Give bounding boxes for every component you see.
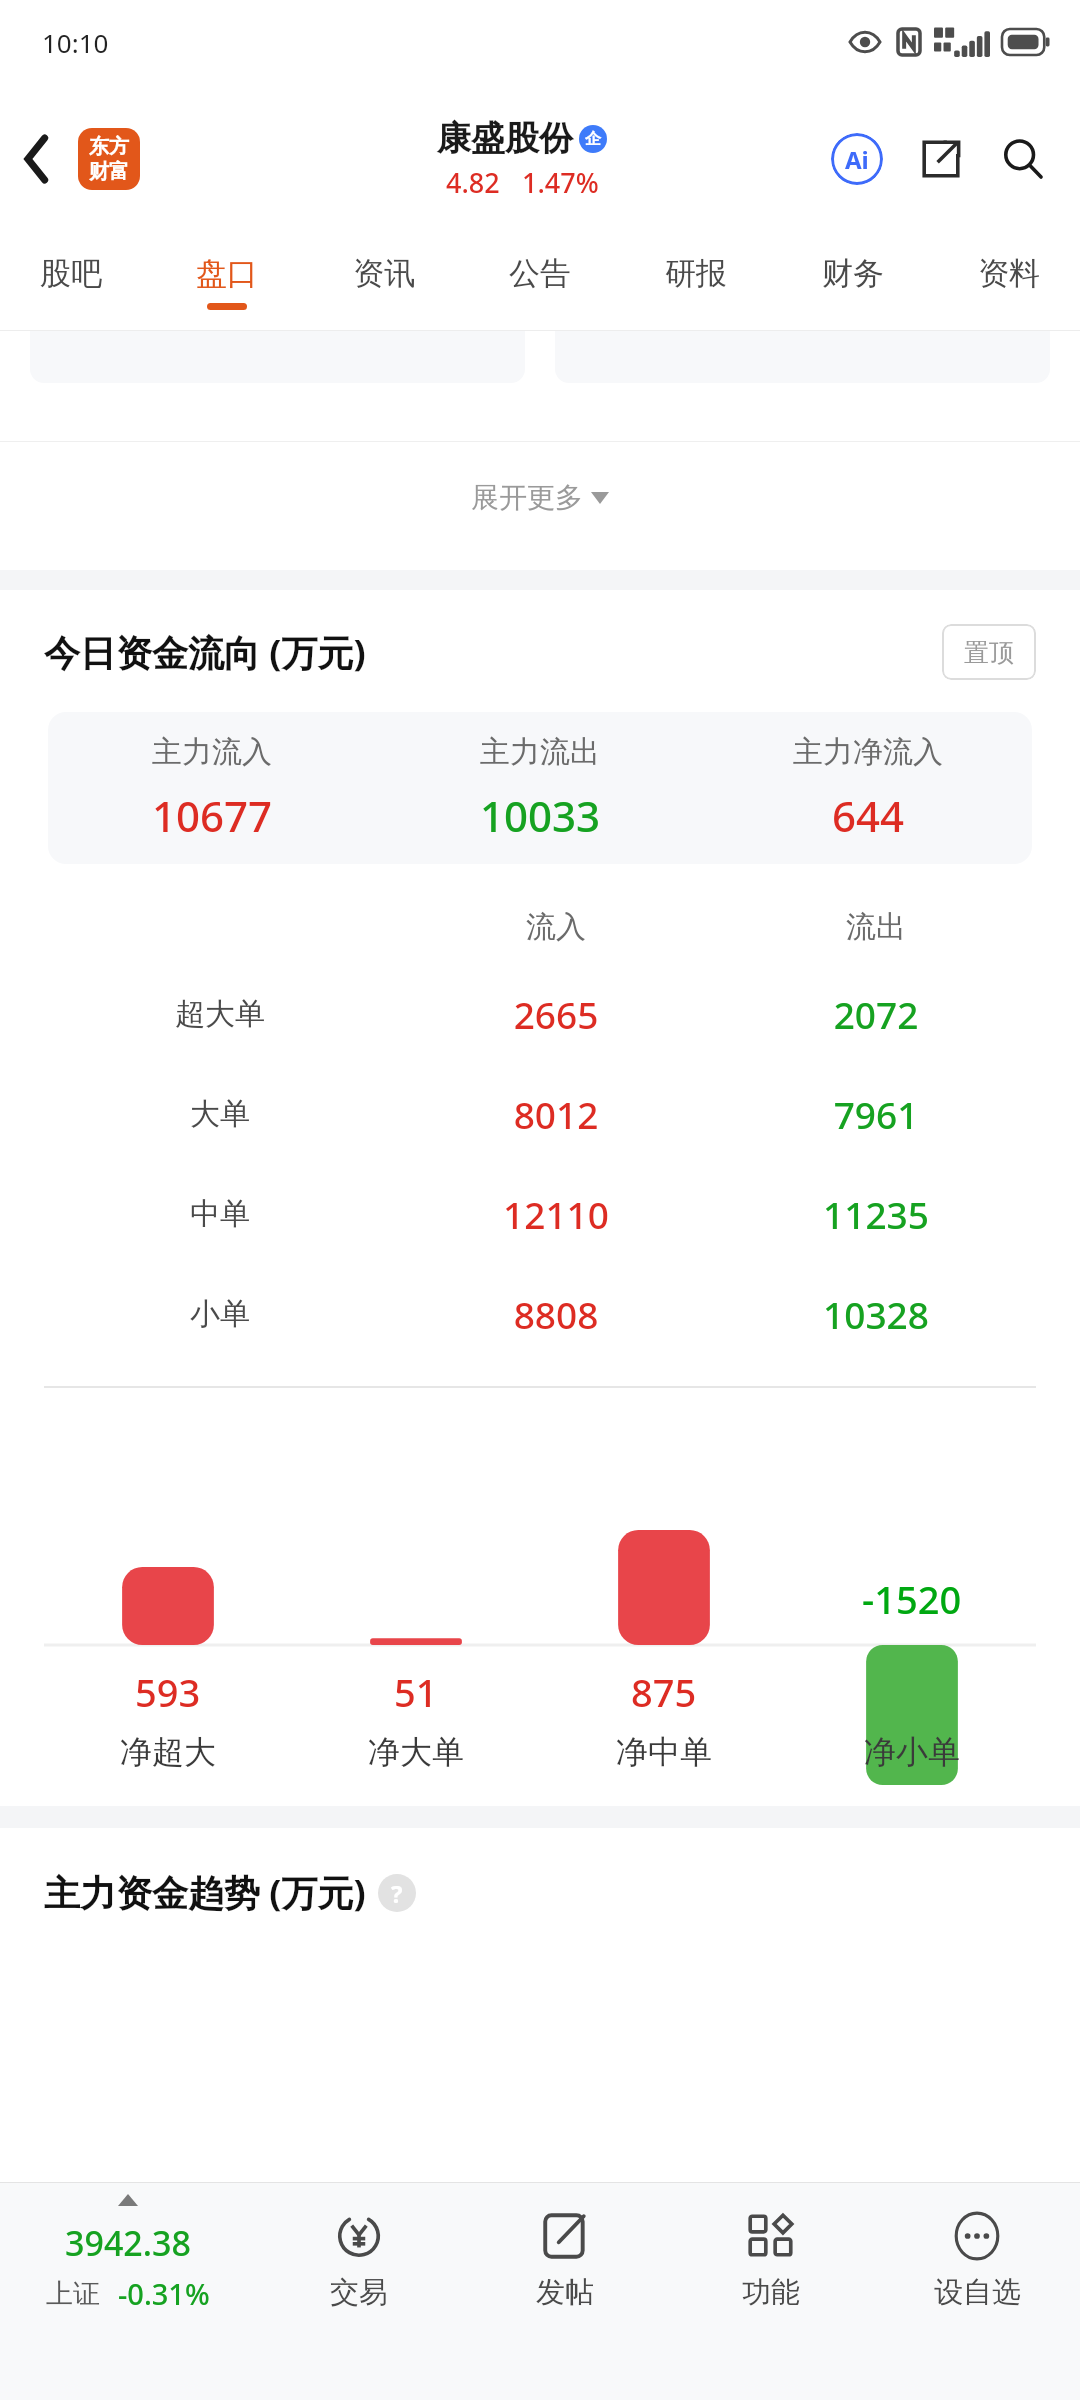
button[interactable]: 大单 bbox=[44, 1064, 1036, 1164]
staticText: 4.82 bbox=[446, 164, 500, 201]
staticText: 功能 bbox=[742, 2274, 800, 2311]
button[interactable]: East Money logo bbox=[78, 128, 140, 190]
staticText: 2665 bbox=[396, 989, 716, 1039]
staticText: -0.31% bbox=[118, 2274, 210, 2313]
button[interactable]: 小单 bbox=[44, 1264, 1036, 1364]
staticText: 主力流出 bbox=[480, 733, 600, 771]
staticText: 净大单 bbox=[368, 1732, 464, 1772]
staticText: 中单 bbox=[190, 1195, 250, 1233]
button[interactable]: Search bbox=[992, 128, 1054, 190]
staticText: 593 bbox=[135, 1666, 201, 1718]
staticText: 公告 bbox=[509, 254, 571, 293]
button[interactable]: 研报 bbox=[665, 234, 727, 330]
staticText: 财富 bbox=[89, 159, 129, 184]
button[interactable]: 3942.38 bbox=[0, 2183, 256, 2338]
staticText: 展开更多 bbox=[471, 480, 583, 515]
staticText: 康盛股份 bbox=[437, 117, 573, 160]
staticText: -1520 bbox=[862, 1573, 962, 1625]
staticText: 10033 bbox=[480, 787, 601, 844]
button[interactable]: 超大单 bbox=[44, 964, 1036, 1064]
staticText: 8012 bbox=[396, 1089, 716, 1139]
button[interactable]: 股吧 bbox=[40, 234, 102, 330]
button[interactable]: 资料 bbox=[978, 234, 1040, 330]
staticText: 东方 bbox=[89, 134, 129, 159]
button[interactable]: 中单 bbox=[44, 1164, 1036, 1264]
staticText: 股吧 bbox=[40, 254, 102, 293]
staticText: 2072 bbox=[716, 989, 1036, 1039]
button[interactable]: 设自选 bbox=[874, 2183, 1080, 2338]
staticText: 净中单 bbox=[616, 1732, 712, 1772]
staticText: Ai bbox=[845, 143, 869, 176]
staticText: 净小单 bbox=[864, 1732, 960, 1772]
staticText: 流出 bbox=[716, 908, 1036, 946]
button[interactable]: 财务 bbox=[822, 234, 884, 330]
staticText: 大单 bbox=[190, 1095, 250, 1133]
button[interactable]: 盘口 bbox=[196, 234, 258, 330]
button[interactable]: 发帖 bbox=[462, 2183, 668, 2338]
staticText: 11235 bbox=[716, 1189, 1036, 1239]
staticText: 流入 bbox=[396, 908, 716, 946]
button[interactable]: 公告 bbox=[509, 234, 571, 330]
staticText: 超大单 bbox=[175, 995, 265, 1033]
staticText: 7961 bbox=[716, 1089, 1036, 1139]
button[interactable]: AI assistant bbox=[826, 128, 888, 190]
staticText: 置顶 bbox=[964, 637, 1014, 668]
button[interactable]: 资讯 bbox=[353, 234, 415, 330]
staticText: 上证 bbox=[46, 2277, 100, 2311]
staticText: 企 bbox=[585, 129, 601, 149]
staticText: 资讯 bbox=[353, 254, 415, 293]
staticText: 3942.38 bbox=[65, 2220, 191, 2266]
staticText: 主力流入 bbox=[152, 733, 272, 771]
staticText: 净超大 bbox=[120, 1732, 216, 1772]
staticText: 1.47% bbox=[522, 164, 599, 201]
staticText: 875 bbox=[631, 1666, 697, 1718]
staticText: 51 bbox=[394, 1666, 438, 1718]
button[interactable]: Help bbox=[378, 1874, 416, 1912]
staticText: 发帖 bbox=[536, 2274, 594, 2311]
staticText: ? bbox=[391, 1877, 403, 1910]
staticText: 10328 bbox=[716, 1289, 1036, 1339]
staticText: 10:10 bbox=[42, 25, 109, 60]
staticText: 12110 bbox=[396, 1189, 716, 1239]
button[interactable]: 置顶 bbox=[942, 624, 1036, 680]
button[interactable]: 功能 bbox=[668, 2183, 874, 2338]
staticText: 设自选 bbox=[934, 2274, 1021, 2311]
button[interactable]: Share bbox=[910, 128, 972, 190]
staticText: 小单 bbox=[190, 1295, 250, 1333]
staticText: 8808 bbox=[396, 1289, 716, 1339]
staticText: 今日资金流向 (万元) bbox=[44, 628, 366, 677]
staticText: 644 bbox=[832, 787, 905, 844]
button[interactable]: 展开更多 bbox=[0, 442, 1080, 552]
button[interactable]: Back bbox=[0, 84, 74, 234]
button[interactable]: 主力流入 bbox=[48, 712, 1032, 864]
staticText: 主力资金趋势 (万元) bbox=[44, 1868, 366, 1917]
staticText: 10677 bbox=[152, 787, 273, 844]
staticText: 研报 bbox=[665, 254, 727, 293]
button[interactable]: 交易 bbox=[256, 2183, 462, 2338]
staticText: 财务 bbox=[822, 254, 884, 293]
staticText: 资料 bbox=[978, 254, 1040, 293]
staticText: 交易 bbox=[330, 2274, 388, 2311]
staticText: 盘口 bbox=[196, 254, 258, 293]
staticText: 主力净流入 bbox=[793, 733, 943, 771]
